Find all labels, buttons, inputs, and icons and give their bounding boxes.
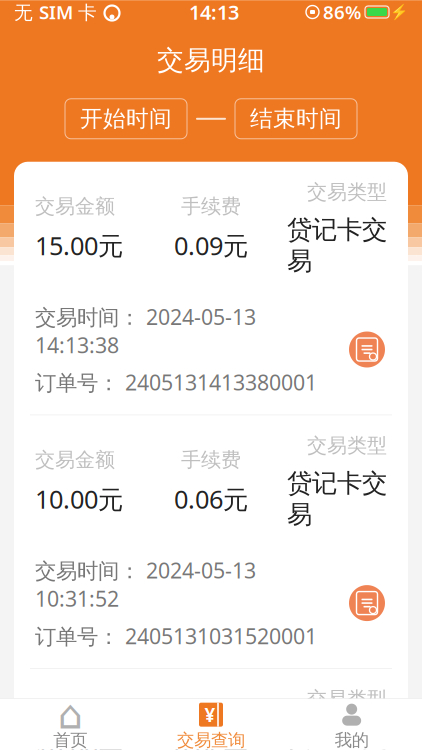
- staticText: 交易时间： 2024-05-13 14:13:38: [35, 302, 256, 359]
- button[interactable]: 交易金额: [14, 669, 408, 750]
- button[interactable]: 开始时间: [65, 99, 187, 139]
- staticText: ⌂: [58, 692, 83, 737]
- button[interactable]: 结束时间: [235, 99, 357, 139]
- staticText: 交易类型: [307, 433, 387, 458]
- staticText: 交易查询: [177, 730, 245, 750]
- staticText: 0.06元: [174, 482, 248, 516]
- staticText: 交易金额: [35, 701, 115, 726]
- staticText: 开始时间: [80, 105, 172, 133]
- staticText: 总笔数(笔): [270, 173, 362, 199]
- button[interactable]: 交易金额: [14, 415, 408, 668]
- button[interactable]: 查看交易详情: [347, 583, 387, 623]
- staticText: 9: [306, 213, 326, 259]
- button[interactable]: ⌂: [0, 703, 141, 750]
- staticText: 交易类型: [307, 180, 387, 204]
- staticText: 手续费: [181, 448, 241, 472]
- staticText: 10.00元: [35, 482, 123, 516]
- staticText: 订单号： 2405131413380001: [35, 368, 317, 396]
- staticText: 结束时间: [250, 105, 342, 133]
- staticText: 交易时间： 2024-05-13 10:31:52: [35, 556, 256, 613]
- staticText: 86%: [323, 0, 361, 24]
- button[interactable]: 查看交易详情: [347, 329, 387, 369]
- button[interactable]: 交易金额: [14, 162, 408, 414]
- staticText: 10.00元: [35, 736, 123, 750]
- staticText: 手续费: [181, 194, 241, 219]
- staticText: 订单号： 2405131031520001: [35, 622, 317, 650]
- staticText: 15.00元: [35, 229, 123, 262]
- staticText: 交易类型: [307, 687, 387, 711]
- staticText: 24467.68: [31, 213, 180, 259]
- staticText: 0.06元: [174, 736, 248, 750]
- staticText: 贷记卡交易: [287, 214, 387, 276]
- staticText: 交易明细: [157, 44, 265, 77]
- staticText: 贷记卡交易: [287, 721, 387, 750]
- staticText: 交易金额: [35, 448, 115, 472]
- staticText: 交易金额: [35, 194, 115, 219]
- staticText: 14:13: [189, 0, 239, 25]
- button[interactable]: ¥: [141, 703, 281, 750]
- staticText: ⚡: [390, 4, 408, 20]
- staticText: 无 SIM 卡: [14, 0, 97, 24]
- staticText: ¥: [204, 702, 215, 727]
- staticText: 我的: [335, 730, 369, 750]
- staticText: 0.09元: [174, 229, 248, 262]
- button[interactable]: 我的: [281, 703, 422, 750]
- staticText: 交易金额(元): [49, 173, 161, 199]
- staticText: 手续费: [181, 701, 241, 726]
- staticText: 贷记卡交易: [287, 468, 387, 530]
- staticText: 首页: [53, 730, 87, 750]
